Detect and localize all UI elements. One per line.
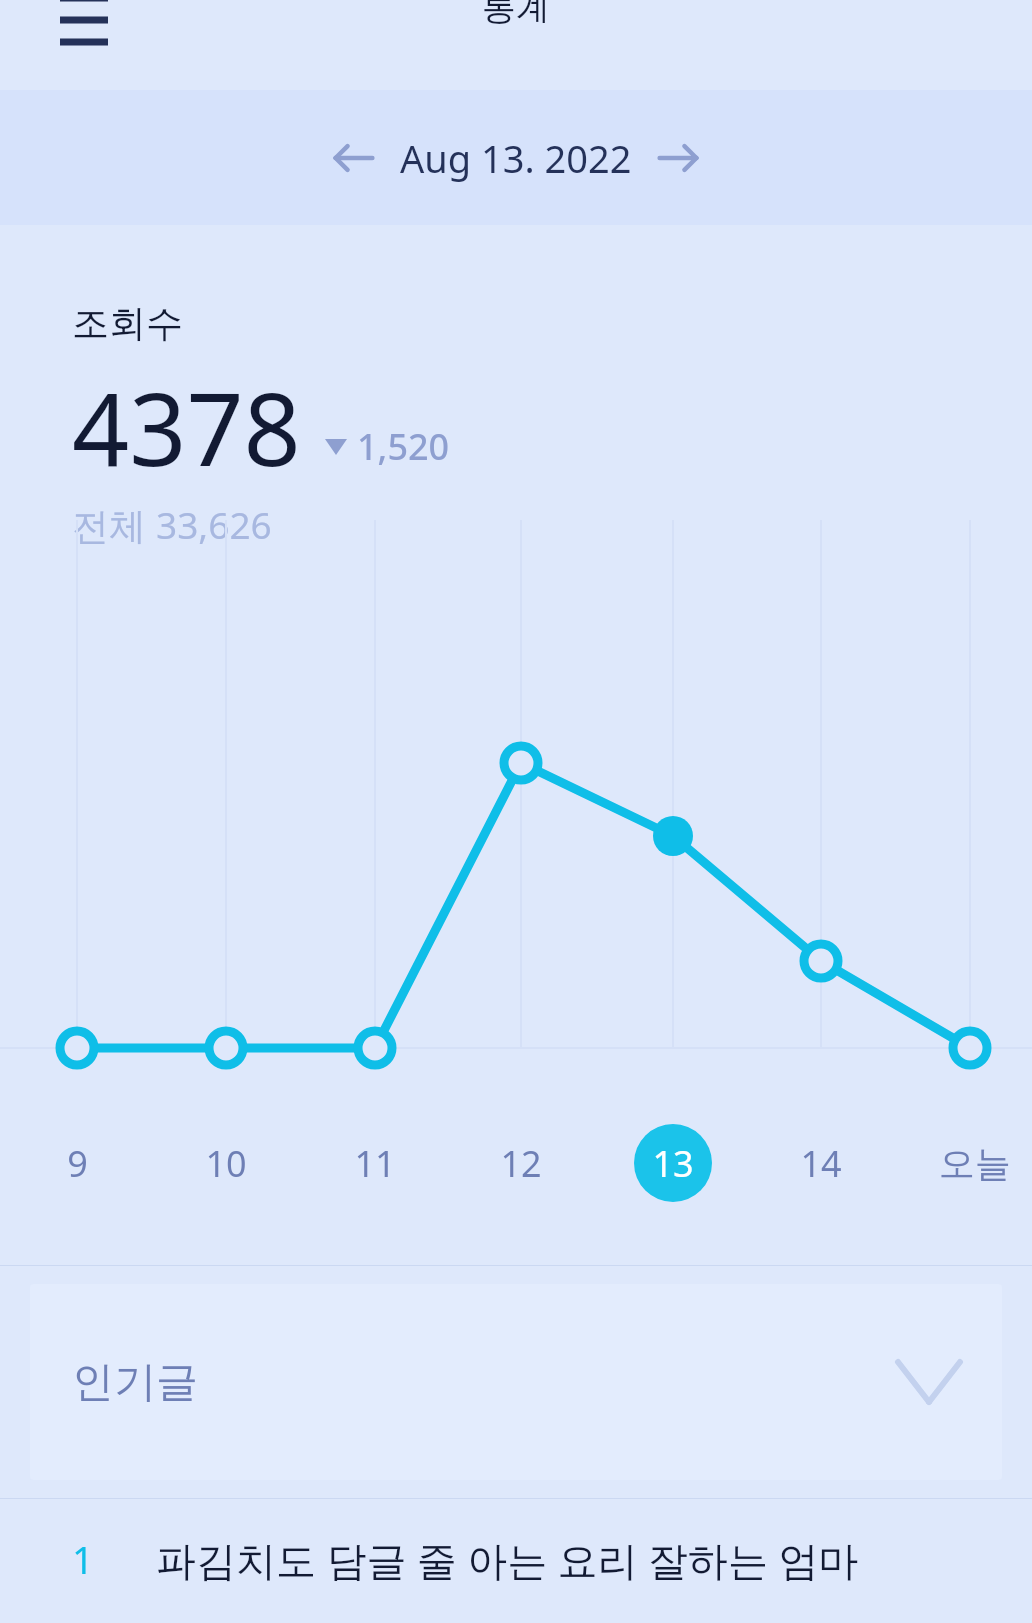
button[interactable]: Next day xyxy=(642,122,714,194)
button[interactable]: 14 xyxy=(773,1115,869,1211)
staticText: 9 xyxy=(67,1139,88,1188)
button[interactable]: 13 xyxy=(625,1115,721,1211)
button[interactable]: 11 xyxy=(327,1115,423,1211)
staticText: 33,626 xyxy=(156,499,272,549)
button[interactable]: Menu xyxy=(36,0,132,70)
button[interactable]: 10 xyxy=(178,1115,274,1211)
staticText: 통계 xyxy=(482,0,550,29)
button[interactable]: 9 xyxy=(29,1115,125,1211)
staticText: 1,520 xyxy=(357,422,450,471)
button[interactable]: 인기글 xyxy=(30,1284,1002,1480)
staticText: 파김치도 담글 줄 아는 요리 잘하는 엄마 xyxy=(156,1532,859,1587)
button[interactable]: Previous day xyxy=(318,122,390,194)
staticText: 13 xyxy=(652,1139,694,1188)
staticText: 10 xyxy=(205,1139,247,1188)
staticText: 12 xyxy=(500,1139,542,1188)
staticText: 인기글 xyxy=(72,1356,198,1409)
staticText: 1 xyxy=(72,1533,94,1585)
staticText: 11 xyxy=(354,1139,396,1188)
button[interactable]: 1 xyxy=(0,1499,1032,1619)
staticText: Aug 13. 2022 xyxy=(400,132,632,184)
staticText: 오늘 xyxy=(939,1141,1011,1186)
staticText: 전체 xyxy=(72,499,156,550)
button[interactable]: 오늘 xyxy=(927,1115,1023,1211)
staticText: 조회수 xyxy=(72,300,183,347)
staticText: 4378 xyxy=(72,359,301,495)
staticText: 14 xyxy=(800,1139,842,1188)
button[interactable]: 12 xyxy=(473,1115,569,1211)
